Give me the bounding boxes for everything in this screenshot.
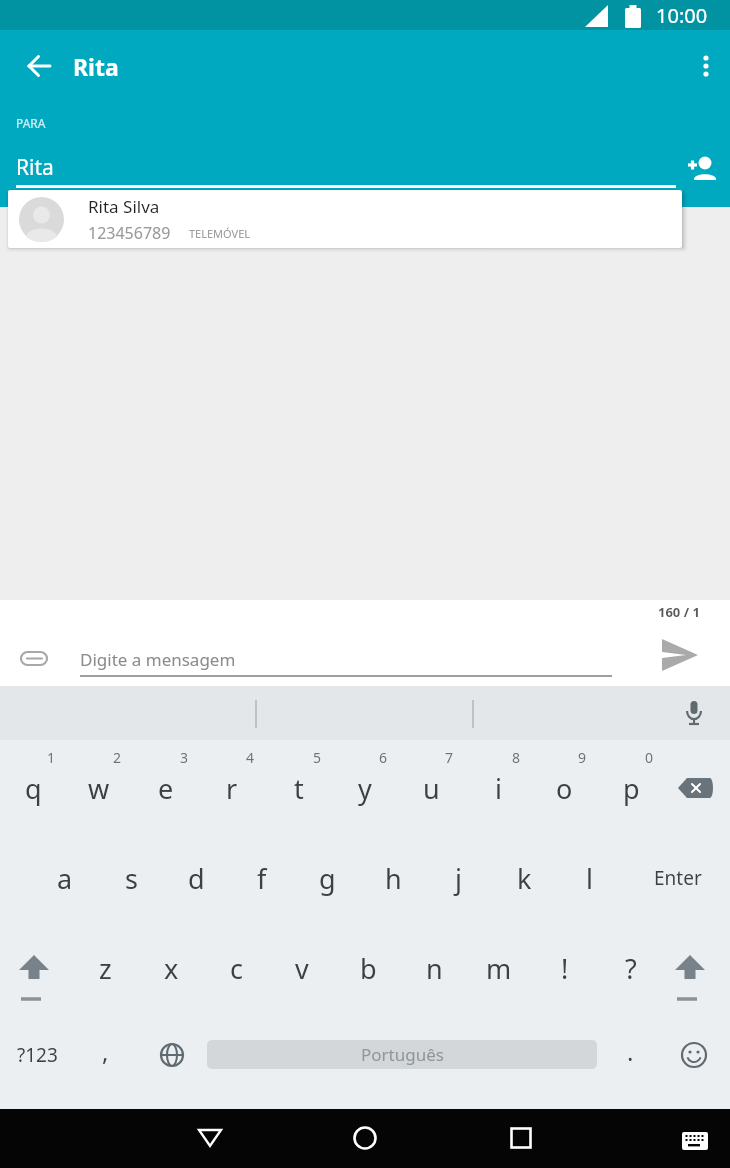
button[interactable]: a [32, 856, 98, 900]
button[interactable]: x [138, 946, 204, 990]
button[interactable]: Rita Silva [8, 190, 682, 248]
button[interactable]: u [398, 766, 464, 810]
button[interactable]: v [269, 946, 335, 990]
staticText: TELEMÓVEL [189, 226, 251, 241]
button[interactable]: m [466, 946, 532, 990]
button[interactable]: d [163, 856, 229, 900]
staticText: n [426, 950, 443, 987]
staticText: o [556, 770, 573, 807]
button[interactable]: ?123 [4, 1033, 70, 1077]
staticText: u [423, 770, 440, 807]
button[interactable]: z [72, 946, 138, 990]
button[interactable]: 1 [18, 735, 84, 779]
button[interactable] [11, 38, 67, 94]
button[interactable]: 8 [483, 735, 549, 779]
staticText: 3 [180, 748, 189, 767]
button[interactable] [499, 1116, 543, 1160]
staticText: Rita [16, 153, 54, 182]
staticText: , [102, 1035, 109, 1068]
button[interactable]: 5 [284, 735, 350, 779]
button[interactable] [673, 1119, 717, 1163]
button[interactable]: . [597, 1029, 663, 1073]
button[interactable] [675, 773, 715, 805]
button[interactable]: h [360, 856, 426, 900]
staticText: Rita Silva [88, 195, 160, 218]
staticText: PARA [16, 115, 46, 131]
button[interactable] [188, 1116, 232, 1160]
button[interactable]: Português [207, 1040, 597, 1069]
button[interactable]: y [332, 766, 398, 810]
staticText: . [627, 1035, 634, 1068]
button[interactable]: j [425, 856, 491, 900]
button[interactable]: 6 [350, 735, 416, 779]
button[interactable] [662, 638, 698, 674]
staticText: f [257, 860, 267, 897]
staticText: 5 [313, 748, 322, 767]
staticText: Digite a mensagem [80, 648, 236, 671]
staticText: ! [561, 950, 569, 987]
button[interactable] [680, 1042, 708, 1070]
button[interactable]: 7 [416, 735, 482, 779]
staticText: 7 [445, 748, 454, 767]
button[interactable]: l [556, 856, 622, 900]
staticText: t [294, 770, 304, 807]
button[interactable]: 4 [217, 735, 283, 779]
staticText: b [360, 950, 377, 987]
staticText: 2 [113, 748, 122, 767]
staticText: c [230, 950, 243, 987]
staticText: 123456789 [88, 222, 171, 244]
button[interactable]: r [199, 766, 265, 810]
button[interactable] [158, 1042, 186, 1070]
staticText: 10:00 [656, 2, 708, 29]
staticText: i [495, 770, 502, 807]
button[interactable]: f [229, 856, 295, 900]
button[interactable]: , [72, 1029, 138, 1073]
staticText: q [25, 770, 42, 807]
button[interactable]: n [401, 946, 467, 990]
staticText: ? [625, 950, 637, 987]
button[interactable]: p [598, 766, 664, 810]
staticText: h [385, 860, 402, 897]
button[interactable]: 3 [151, 735, 217, 779]
button[interactable]: o [531, 766, 597, 810]
button[interactable] [680, 699, 708, 727]
button[interactable]: e [133, 766, 199, 810]
button[interactable]: s [98, 856, 164, 900]
button[interactable]: 0 [616, 735, 682, 779]
button[interactable]: ? [598, 946, 664, 990]
staticText: s [125, 860, 138, 897]
staticText: 6 [379, 748, 388, 767]
button[interactable] [18, 642, 52, 676]
staticText: e [158, 770, 174, 807]
staticText: m [486, 950, 512, 987]
staticText: g [319, 860, 336, 897]
staticText: v [295, 950, 309, 987]
staticText: l [586, 860, 593, 897]
button[interactable] [676, 143, 730, 197]
staticText: 1 [47, 748, 56, 767]
staticText: k [517, 860, 532, 897]
staticText: x [164, 950, 179, 987]
staticText: y [358, 770, 372, 807]
button[interactable]: i [465, 766, 531, 810]
button[interactable]: t [266, 766, 332, 810]
button[interactable]: w [66, 766, 132, 810]
button[interactable] [673, 953, 707, 1005]
button[interactable] [17, 953, 51, 1005]
button[interactable]: 9 [549, 735, 615, 779]
staticText: z [99, 950, 112, 987]
staticText: Enter [654, 865, 702, 891]
button[interactable]: q [0, 766, 66, 810]
button[interactable]: b [335, 946, 401, 990]
button[interactable]: ! [532, 946, 598, 990]
button[interactable]: g [294, 856, 360, 900]
button[interactable]: 2 [84, 735, 150, 779]
staticText: Rita [73, 51, 119, 82]
staticText: Português [361, 1043, 444, 1066]
button[interactable]: c [203, 946, 269, 990]
button[interactable]: k [491, 856, 557, 900]
staticText: 160 / 1 [658, 603, 700, 621]
button[interactable]: Enter [645, 856, 711, 900]
button[interactable] [682, 42, 730, 90]
button[interactable] [343, 1116, 387, 1160]
